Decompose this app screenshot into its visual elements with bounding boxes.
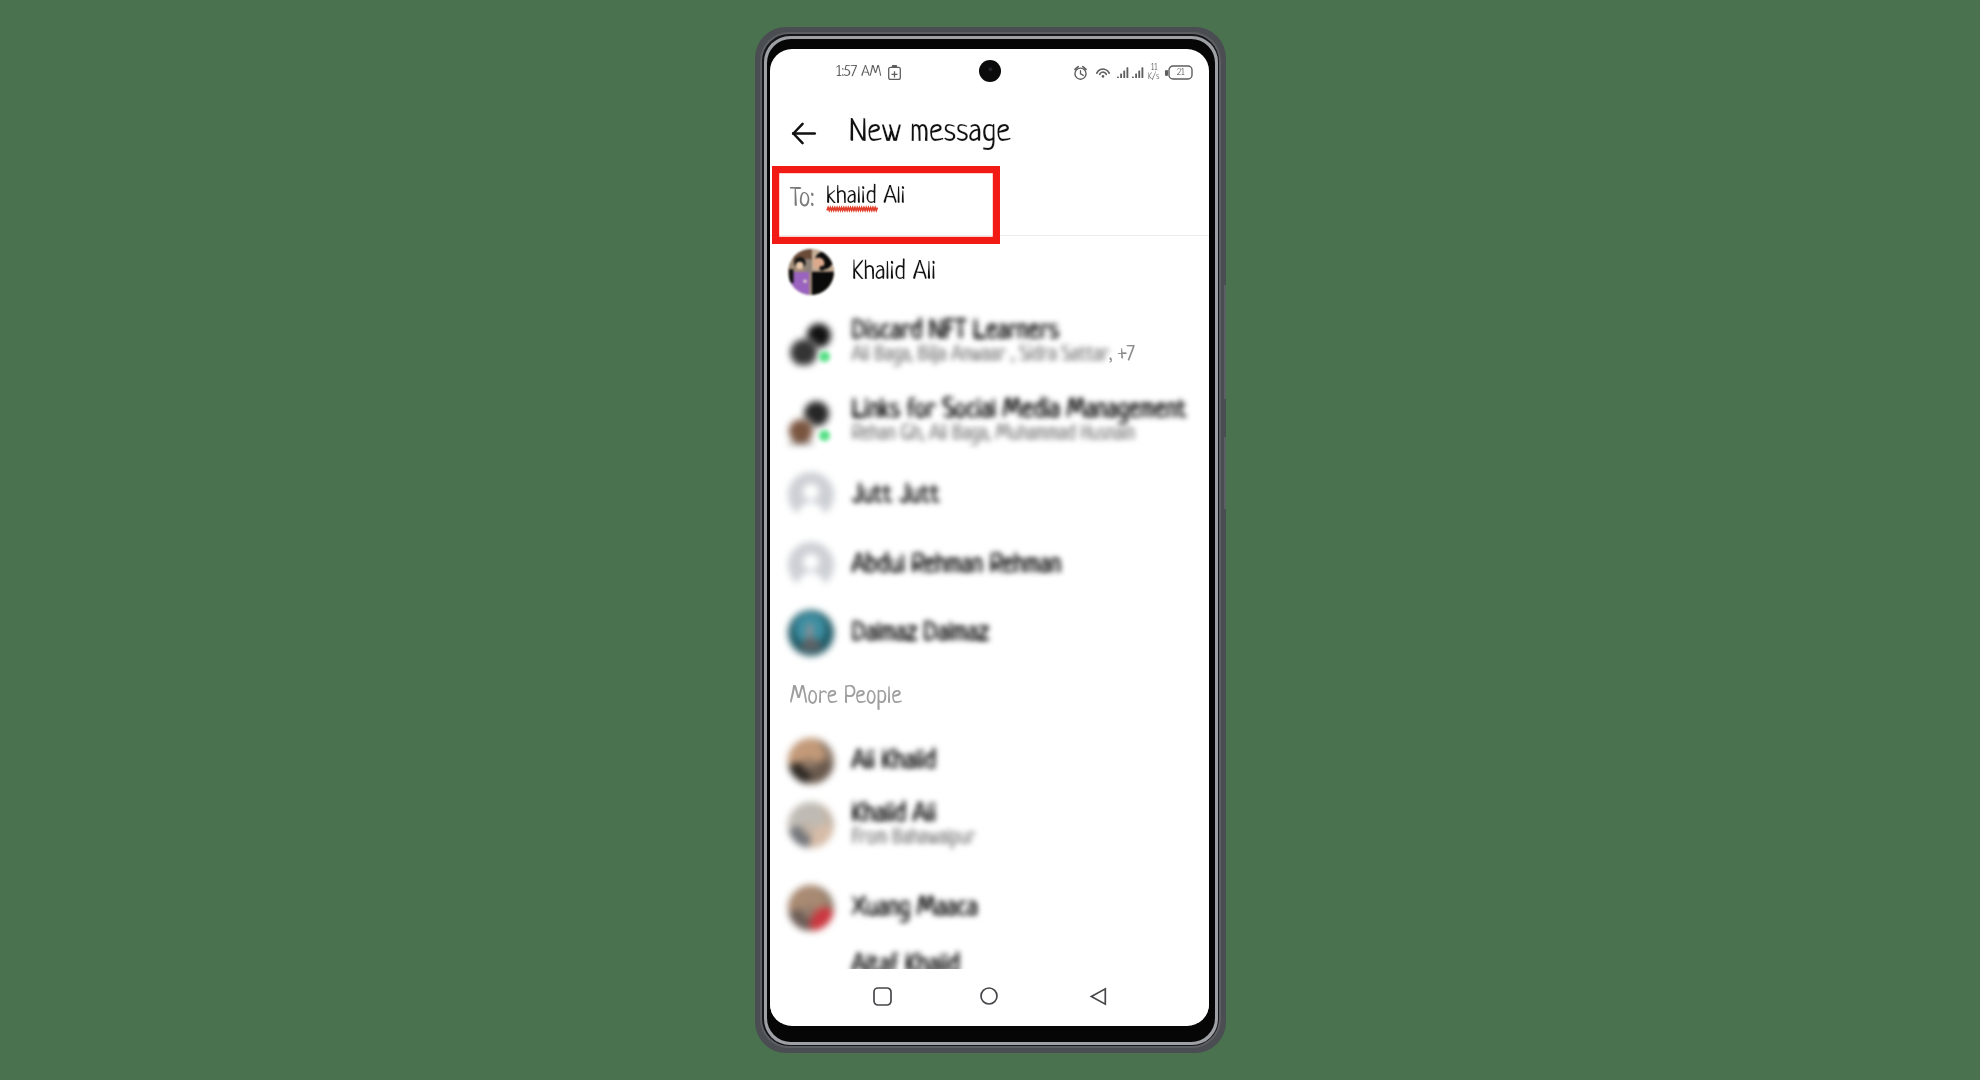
- staticText: , +7: [1109, 345, 1135, 366]
- staticText: Rehan Gh, Ali Baga, Muhammad Husnain: [852, 424, 1135, 445]
- button[interactable]: To:: [770, 166, 1209, 244]
- button[interactable]: Back: [1078, 969, 1118, 1023]
- staticText: Khalid Ali: [852, 801, 936, 828]
- staticText: 1:57 AM: [836, 64, 882, 81]
- staticText: Discard NFT Learners: [852, 318, 1059, 345]
- staticText: Discard NFT Learners: [852, 318, 1059, 345]
- staticText: Altaf Khalid: [852, 952, 960, 979]
- staticText: Altaf Khalid: [852, 952, 960, 979]
- staticText: Links for Social Media Management: [852, 397, 1187, 424]
- staticText: Ali Baga, Bilja Anwaar , Sidra Sattar: [852, 345, 1109, 366]
- button[interactable]: Abdul Rehman Rehman: [770, 538, 1209, 592]
- staticText: Dalmaz Dalmaz: [852, 620, 989, 647]
- staticText: More People: [790, 685, 902, 710]
- staticText: Ali Khalid: [852, 748, 936, 775]
- button[interactable]: Home: [969, 969, 1009, 1023]
- staticText: Ali Baga, Bilja Anwaar , Sidra Sattar: [852, 345, 1109, 366]
- staticText: From Bahawalpur: [852, 828, 976, 849]
- staticText: khalid Ali: [826, 184, 906, 210]
- button[interactable]: Back: [784, 110, 822, 156]
- button[interactable]: Links for Social Media Management: [770, 394, 1209, 448]
- staticText: 11: [1151, 63, 1158, 72]
- staticText: 21: [1177, 67, 1185, 78]
- staticText: Links for Social Media Management: [852, 397, 1187, 424]
- button[interactable]: Dalmaz Dalmaz: [770, 606, 1209, 660]
- button[interactable]: Khalid Ali: [770, 798, 1209, 852]
- button[interactable]: Khalid Ali: [770, 245, 1209, 299]
- staticText: Xuang Maaca: [852, 895, 978, 922]
- button[interactable]: Ali Khalid: [770, 734, 1209, 788]
- staticText: Jutt Jutt: [852, 482, 940, 509]
- staticText: Rehan Gh, Ali Baga, Muhammad Husnain: [852, 424, 1135, 445]
- staticText: Dalmaz Dalmaz: [852, 620, 989, 647]
- button[interactable]: Altaf Khalid: [770, 938, 1209, 992]
- staticText: New message: [849, 116, 1011, 151]
- button[interactable]: Xuang Maaca: [770, 881, 1209, 935]
- staticText: Khalid Ali: [852, 259, 936, 286]
- staticText: Jutt Jutt: [852, 482, 940, 509]
- staticText: K/s: [1148, 72, 1160, 81]
- staticText: Abdul Rehman Rehman: [852, 552, 1061, 579]
- button[interactable]: Jutt Jutt: [770, 468, 1209, 522]
- staticText: Abdul Rehman Rehman: [852, 552, 1061, 579]
- staticText: Ali Khalid: [852, 748, 936, 775]
- staticText: From Bahawalpur: [852, 828, 976, 849]
- staticText: Xuang Maaca: [852, 895, 978, 922]
- staticText: To:: [790, 186, 814, 213]
- button[interactable]: Discard NFT Learners: [770, 315, 1209, 369]
- button[interactable]: Recents: [862, 969, 902, 1023]
- staticText: Khalid Ali: [852, 801, 936, 828]
